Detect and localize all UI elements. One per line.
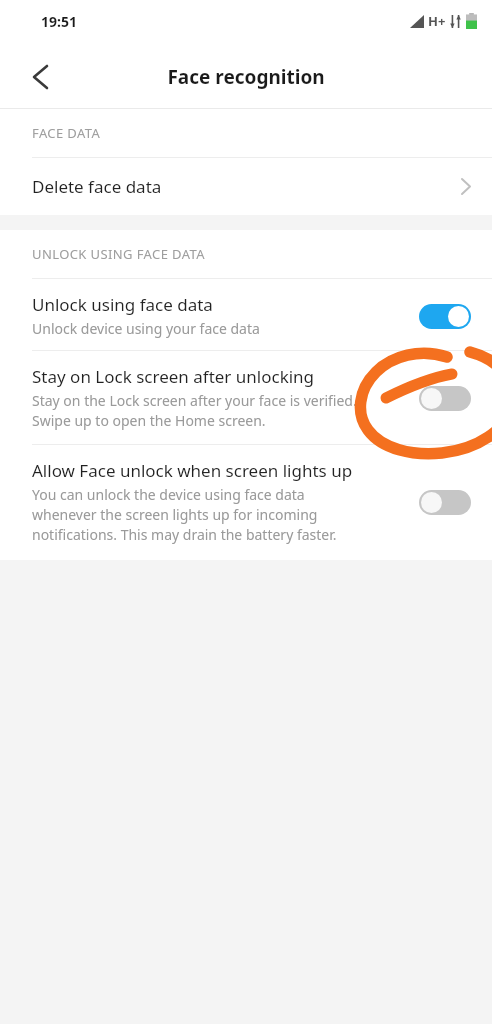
button[interactable]: Toggle off — [418, 383, 472, 413]
button[interactable]: Stay on Lock screen after unlocking — [0, 351, 492, 444]
staticText: Stay on the Lock screen after your face … — [32, 391, 357, 410]
staticText: Unlock using face data — [32, 293, 213, 316]
button[interactable]: Delete face data — [0, 158, 492, 215]
button[interactable]: Allow Face unlock when screen lights up — [0, 445, 492, 560]
button[interactable]: Toggle on — [418, 301, 472, 331]
staticText: whenever the screen lights up for incomi… — [32, 505, 318, 524]
button[interactable]: Back — [14, 51, 66, 103]
staticText: 19:51 — [41, 12, 77, 31]
staticText: Delete face data — [32, 175, 162, 198]
staticText: H+ — [428, 12, 446, 30]
staticText: notifications. This may drain the batter… — [32, 525, 337, 544]
staticText: Face recognition — [167, 64, 325, 90]
staticText: You can unlock the device using face dat… — [32, 485, 305, 504]
staticText: Swipe up to open the Home screen. — [32, 411, 266, 430]
staticText: Allow Face unlock when screen lights up — [32, 459, 353, 482]
button[interactable]: Toggle off — [418, 487, 472, 517]
button[interactable]: Unlock using face data — [0, 279, 492, 350]
staticText: UNLOCK USING FACE DATA — [32, 245, 205, 263]
staticText: Unlock device using your face data — [32, 319, 260, 338]
staticText: FACE DATA — [32, 124, 101, 142]
staticText: Stay on Lock screen after unlocking — [32, 365, 315, 388]
